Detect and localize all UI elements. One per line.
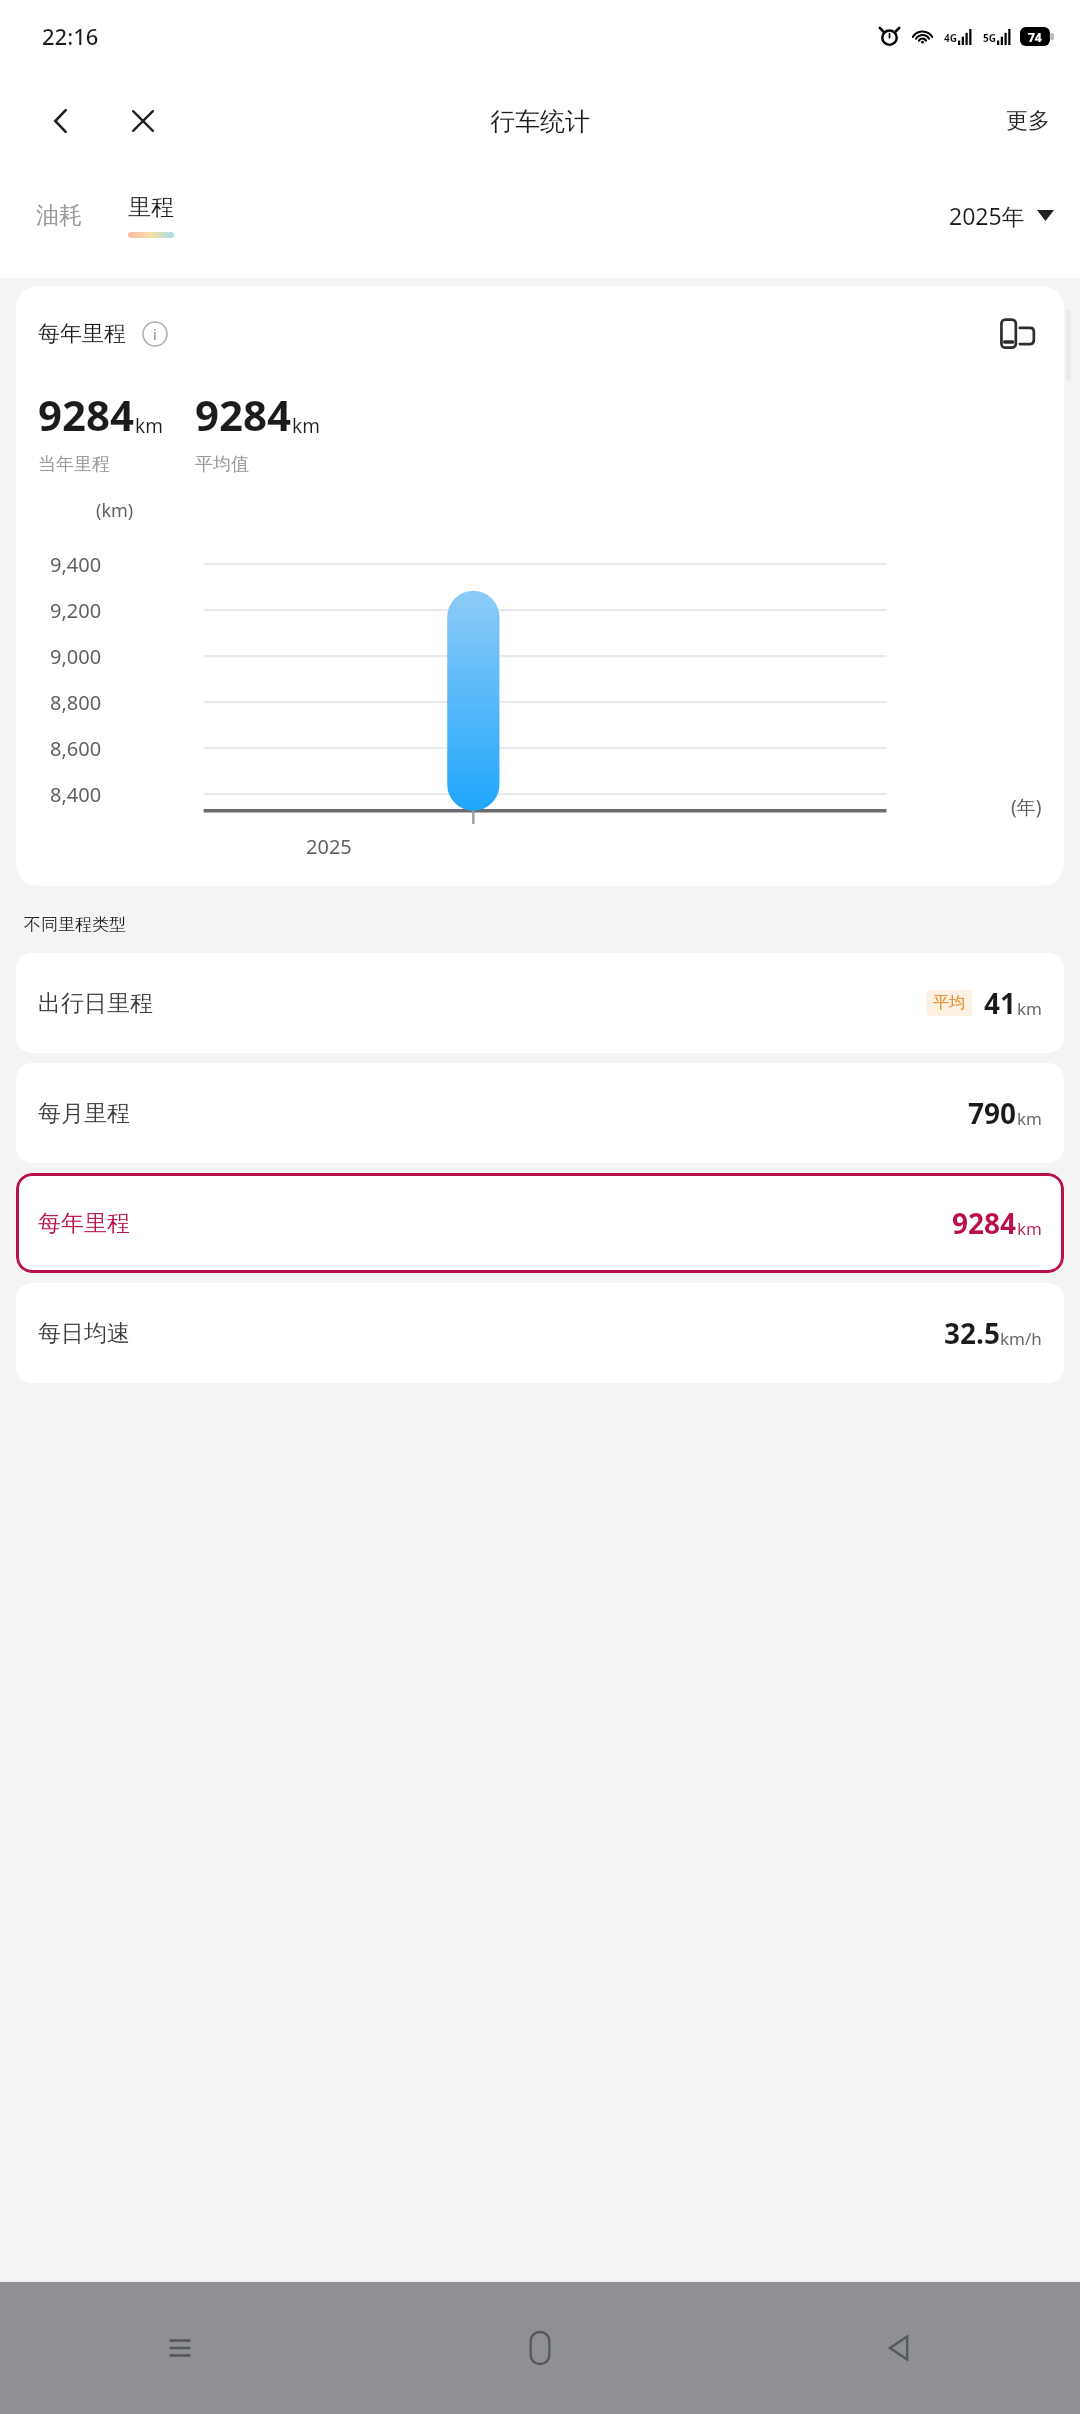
staticText: 8,400 (50, 781, 102, 808)
staticText: km (1017, 1217, 1042, 1240)
staticText: 9,400 (50, 551, 102, 578)
staticText: 9,200 (50, 597, 102, 624)
staticText: 9284 (38, 386, 135, 443)
staticText: 不同里程类型 (24, 914, 126, 935)
button[interactable]: 2025年 (937, 190, 1080, 241)
staticText: 里程 (128, 193, 174, 222)
button[interactable]: Home (360, 2282, 720, 2414)
button[interactable]: Close (112, 90, 174, 152)
staticText: 每日均速 (38, 1319, 130, 1348)
button[interactable]: 每年里程 (16, 1173, 1064, 1273)
staticText: 8,600 (50, 735, 102, 762)
button[interactable]: Rotate screen (994, 310, 1042, 358)
button[interactable]: 里程 (114, 187, 188, 244)
staticText: 每年里程 (38, 320, 126, 348)
staticText: i (153, 325, 157, 344)
staticText: km (135, 413, 163, 439)
staticText: 2025 (306, 833, 352, 860)
staticText: 4G (944, 31, 957, 45)
button[interactable]: 更多 (976, 95, 1080, 147)
staticText: 平均 (933, 993, 965, 1013)
button[interactable]: 出行日里程 (16, 953, 1064, 1053)
staticText: 5G (983, 31, 996, 45)
staticText: 74 (1028, 29, 1042, 45)
button[interactable]: 每年里程 (16, 286, 1064, 886)
button[interactable]: 每日均速 (16, 1283, 1064, 1383)
staticText: 平均值 (195, 453, 249, 476)
staticText: 9,000 (50, 643, 102, 670)
button[interactable]: Back (30, 90, 92, 152)
staticText: 790 (968, 1094, 1017, 1132)
staticText: 油耗 (36, 201, 82, 230)
staticText: 行车统计 (490, 106, 590, 137)
staticText: 8,800 (50, 689, 102, 716)
staticText: km/h (1000, 1327, 1042, 1350)
staticText: km (1017, 997, 1042, 1020)
staticText: 2025年 (949, 200, 1025, 231)
button[interactable]: Recents (0, 2282, 360, 2414)
button[interactable]: 油耗 (22, 191, 96, 240)
staticText: 更多 (1006, 107, 1050, 135)
staticText: 32.5 (944, 1314, 1000, 1352)
staticText: km (292, 413, 320, 439)
staticText: 每年里程 (38, 1209, 130, 1238)
staticText: (km) (96, 498, 134, 523)
staticText: 当年里程 (38, 453, 110, 476)
button[interactable]: Info (138, 317, 172, 351)
button[interactable]: Back (720, 2282, 1080, 2414)
staticText: 22:16 (42, 21, 99, 51)
staticText: 9284 (952, 1204, 1017, 1242)
staticText: 每月里程 (38, 1099, 130, 1128)
staticText: km (1017, 1107, 1042, 1130)
button[interactable]: 每月里程 (16, 1063, 1064, 1163)
staticText: 41 (984, 984, 1017, 1022)
staticText: 9284 (195, 386, 292, 443)
staticText: (年) (1011, 794, 1042, 820)
staticText: 出行日里程 (38, 989, 153, 1018)
